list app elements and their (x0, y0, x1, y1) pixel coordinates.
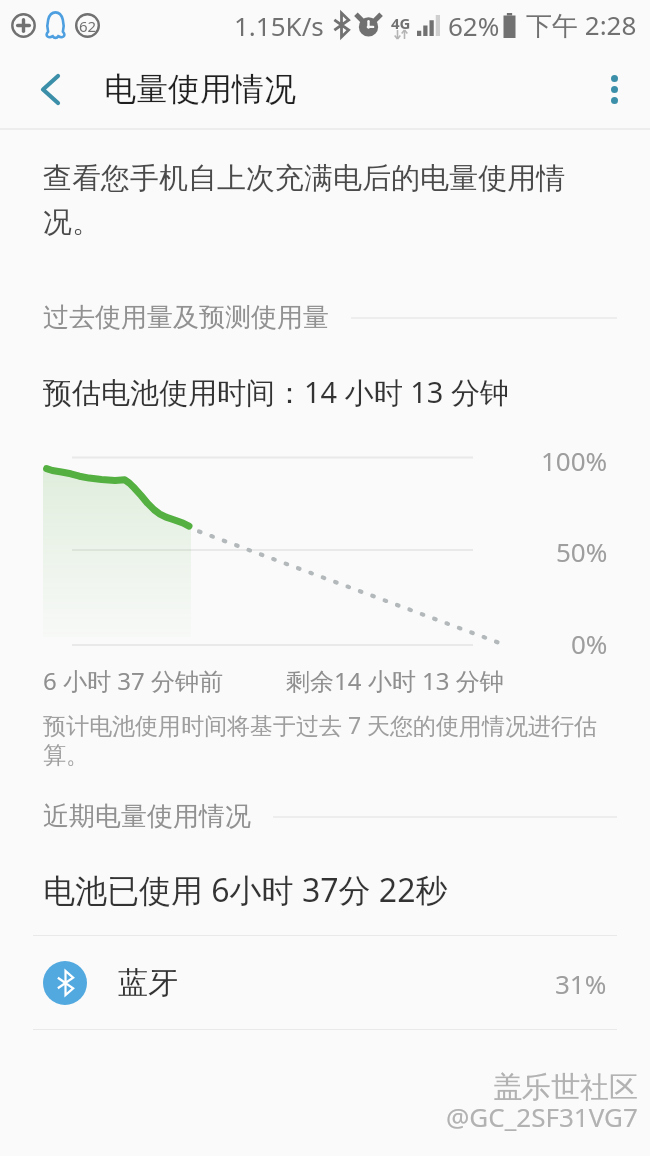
button[interactable]: 蓝牙 (0, 937, 650, 1029)
staticText: 0% (571, 626, 608, 661)
staticText: 预计电池使用时间将基于过去 7 天您的使用情况进行估算。 (43, 709, 605, 770)
staticText: 100% (541, 443, 608, 478)
staticText: 下午 2:28 (526, 7, 637, 43)
staticText: 4G (391, 13, 411, 33)
staticText: 31% (555, 966, 607, 1001)
staticText: 50% (556, 534, 608, 569)
staticText: 盖乐世社区 (493, 1069, 638, 1106)
staticText: 62% (448, 8, 500, 43)
button[interactable]: More options (578, 50, 650, 128)
staticText: 蓝牙 (118, 964, 178, 1002)
staticText: 过去使用量及预测使用量 (43, 301, 329, 334)
staticText: 6 小时 37 分钟前 (43, 664, 223, 697)
staticText: 电量使用情况 (104, 69, 296, 109)
staticText: 电池已使用 6小时 37分 22秒 (43, 868, 448, 912)
staticText: @GC_2SF31VG7 (446, 1099, 638, 1134)
staticText: 查看您手机自上次充满电后的电量使用情况。 (43, 160, 588, 240)
staticText: 近期电量使用情况 (43, 800, 251, 833)
button[interactable]: Back (11, 50, 89, 128)
staticText: 预估电池使用时间：14 小时 13 分钟 (43, 372, 509, 412)
staticText: 1.15K/s (234, 8, 324, 43)
staticText: 62 (79, 16, 97, 36)
staticText: 剩余14 小时 13 分钟 (286, 664, 504, 697)
